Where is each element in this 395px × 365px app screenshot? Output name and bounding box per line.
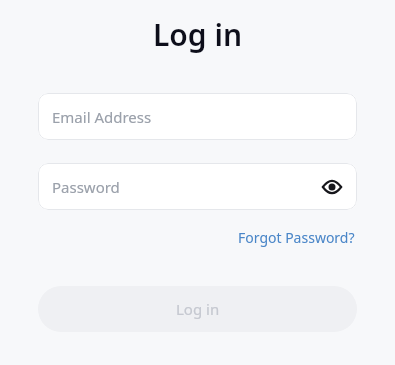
button[interactable]: Forgot Password? <box>236 226 357 249</box>
staticText: Log in <box>38 14 357 55</box>
button[interactable]: Password <box>38 163 357 210</box>
staticText: Log in <box>176 299 220 319</box>
button[interactable]: Email Address <box>38 93 357 140</box>
button[interactable]: Log in <box>38 286 357 332</box>
staticText: Email Address <box>52 107 152 127</box>
staticText: Forgot Password? <box>238 228 355 247</box>
staticText: Password <box>52 177 120 197</box>
button[interactable]: Show password <box>320 175 344 199</box>
